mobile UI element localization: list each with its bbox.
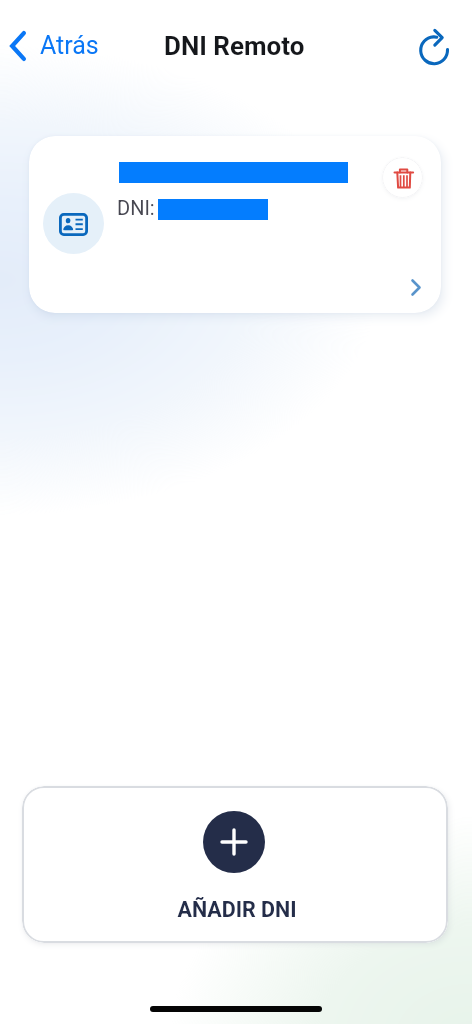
button[interactable]: Atrás <box>5 26 104 66</box>
button[interactable]: Refrescar <box>410 26 458 74</box>
staticText: AÑADIR DNI <box>169 897 305 922</box>
staticText: DNI Remoto <box>164 31 305 61</box>
button[interactable]: Eliminar <box>382 157 423 198</box>
button[interactable]: AÑADIR DNI <box>22 786 448 943</box>
staticText: Atrás <box>40 31 99 60</box>
button[interactable]: DNI: <box>29 136 441 313</box>
staticText: DNI: <box>117 196 155 219</box>
